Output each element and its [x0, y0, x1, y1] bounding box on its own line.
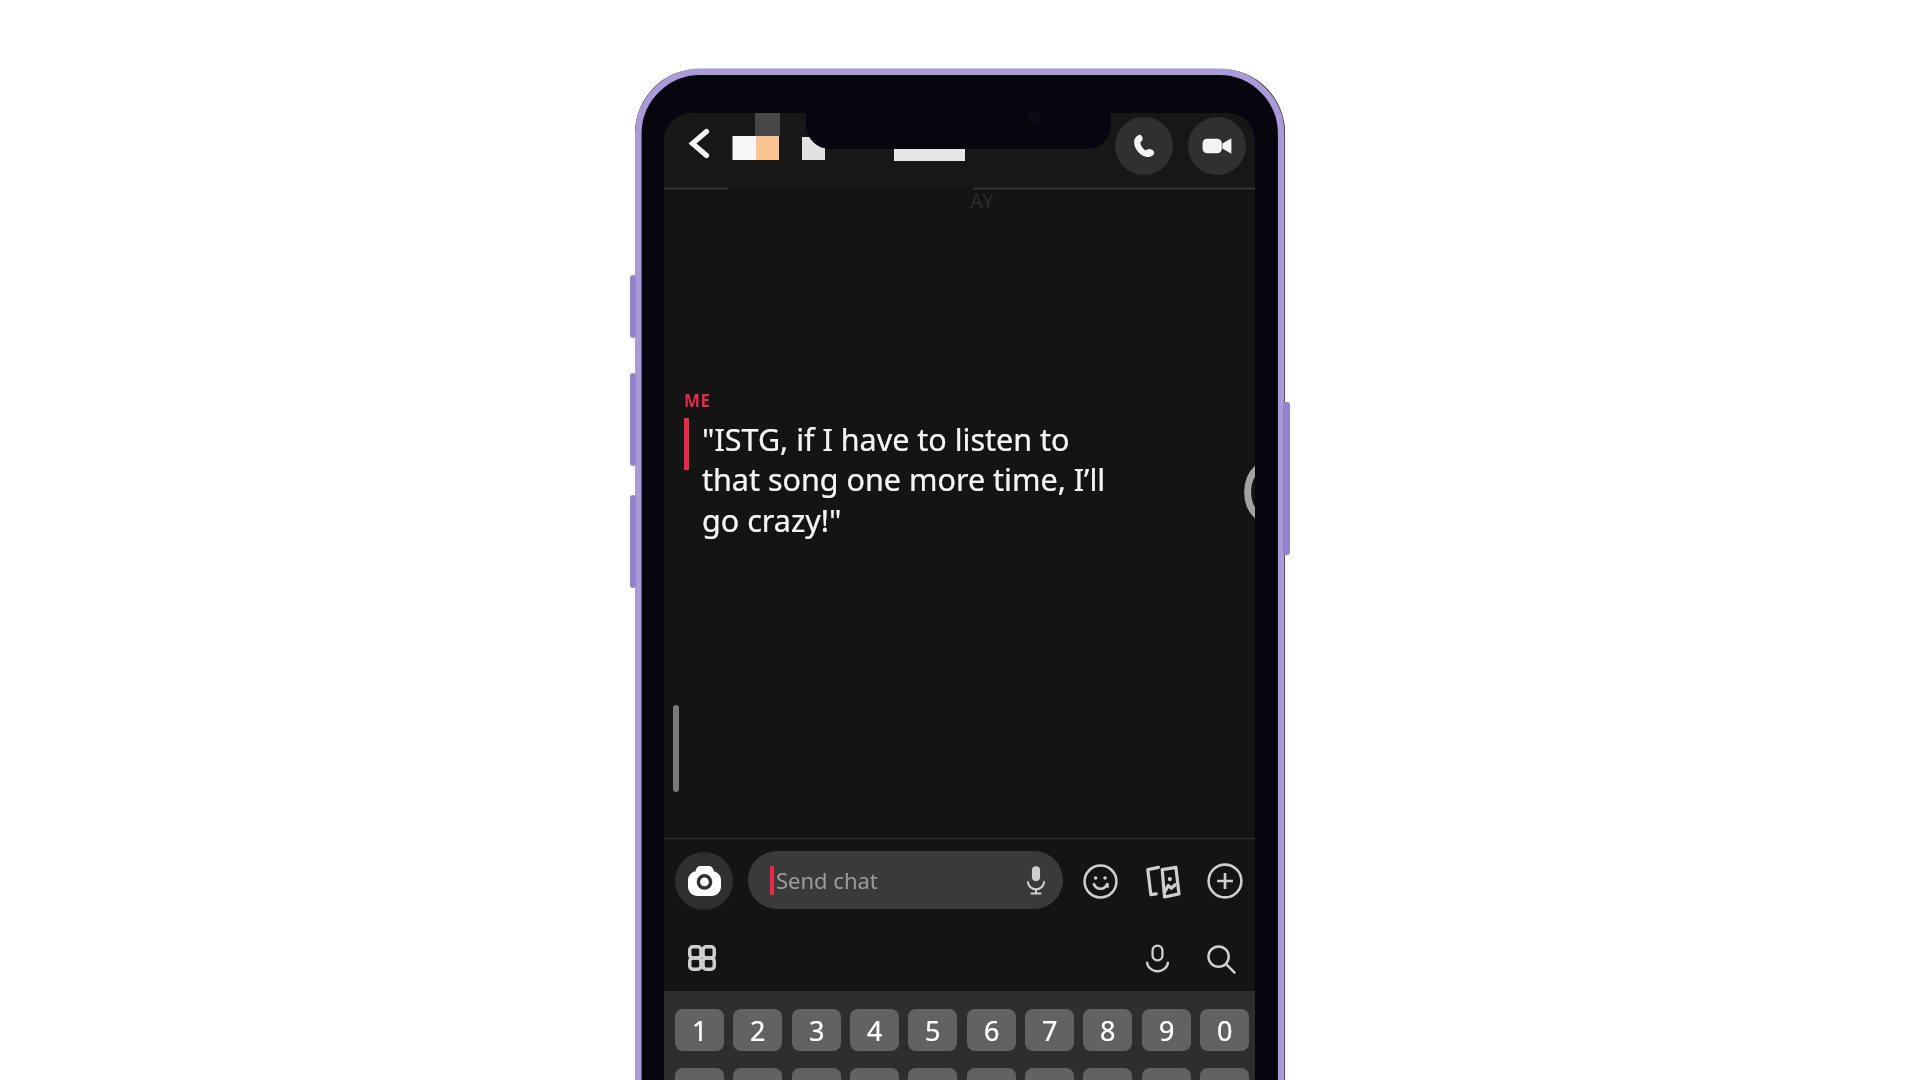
staticText: ME: [684, 389, 711, 412]
button[interactable]: 2: [733, 1009, 782, 1051]
button[interactable]: Voice input: [1136, 938, 1178, 980]
button[interactable]: >: [1083, 1068, 1132, 1080]
staticText: 1: [692, 1012, 708, 1049]
button[interactable]: Profile: [732, 113, 782, 163]
button[interactable]: Send chat: [748, 851, 1063, 909]
button[interactable]: Camera: [675, 852, 733, 910]
button[interactable]: Emoji: [1078, 859, 1122, 903]
button[interactable]: Back: [677, 121, 722, 166]
staticText: 2: [750, 1012, 766, 1049]
staticText: 0: [1217, 1012, 1233, 1049]
button[interactable]: \: [733, 1068, 782, 1080]
staticText: 9: [1159, 1012, 1175, 1049]
button[interactable]: 6: [967, 1009, 1016, 1051]
button[interactable]: ME: [684, 389, 1122, 541]
button[interactable]: 7: [1025, 1009, 1074, 1051]
button[interactable]: =: [850, 1068, 899, 1080]
button[interactable]: 0: [1200, 1009, 1249, 1051]
staticText: "ISTG, if I have to listen to that song …: [702, 418, 1122, 541]
button[interactable]: <: [1025, 1068, 1074, 1080]
staticText: 8: [1100, 1012, 1116, 1049]
button[interactable]: Stickers: [1141, 859, 1185, 903]
button[interactable]: More options: [1203, 859, 1247, 903]
staticText: 3: [809, 1012, 825, 1049]
button[interactable]: ]: [967, 1068, 1016, 1080]
button[interactable]: %: [675, 1068, 724, 1080]
button[interactable]: \: [1200, 1068, 1249, 1080]
staticText: 4: [867, 1012, 883, 1049]
button[interactable]: Video call: [1188, 117, 1246, 175]
button[interactable]: 5: [908, 1009, 957, 1051]
button[interactable]: |: [792, 1068, 841, 1080]
button[interactable]: /: [1142, 1068, 1191, 1080]
staticText: Send chat: [776, 865, 878, 895]
button[interactable]: [: [908, 1068, 957, 1080]
button[interactable]: 3: [792, 1009, 841, 1051]
button[interactable]: 4: [850, 1009, 899, 1051]
staticText: AY: [970, 187, 994, 214]
button[interactable]: 1: [675, 1009, 724, 1051]
button[interactable]: Voice call: [1115, 117, 1173, 175]
button[interactable]: Keyboard apps: [681, 937, 723, 979]
button[interactable]: 9: [1142, 1009, 1191, 1051]
button[interactable]: 8: [1083, 1009, 1132, 1051]
staticText: 7: [1042, 1012, 1058, 1049]
staticText: 5: [925, 1012, 941, 1049]
button[interactable]: Search: [1200, 938, 1242, 980]
staticText: 6: [984, 1012, 1000, 1049]
